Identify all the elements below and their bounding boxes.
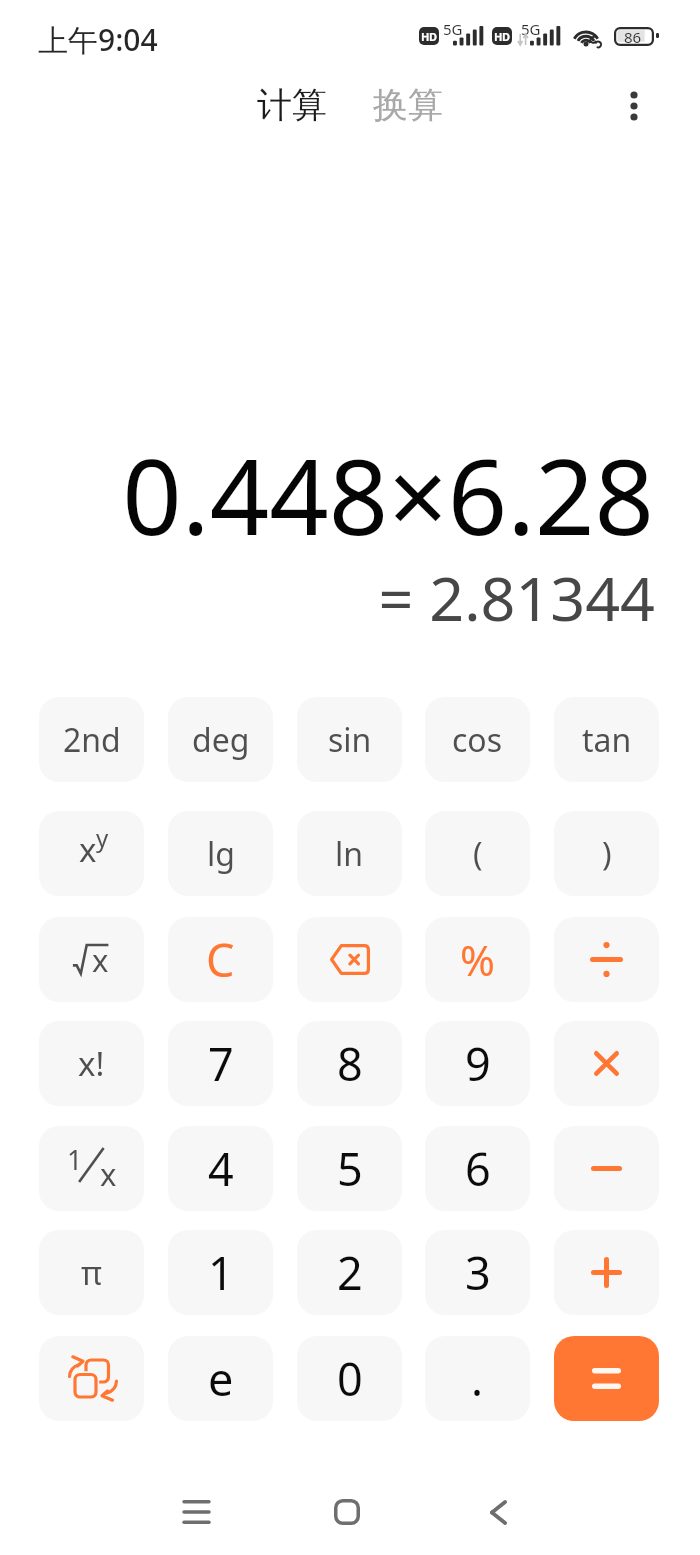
button[interactable]: Convert [39, 1336, 144, 1421]
button[interactable]: Factorial [39, 1021, 144, 1106]
staticText: HD [421, 29, 437, 44]
staticText: 1 [208, 1242, 234, 1303]
staticText: C [206, 929, 235, 990]
button[interactable]: π [39, 1230, 144, 1315]
staticText: 4 [208, 1138, 234, 1199]
button[interactable]: C [168, 917, 273, 1002]
button[interactable]: ) [554, 811, 659, 896]
button[interactable]: 换算 [367, 75, 449, 135]
button[interactable]: deg [168, 697, 273, 782]
staticText: e [208, 1348, 234, 1409]
button[interactable]: 5 [297, 1126, 402, 1211]
button[interactable]: 8 [297, 1021, 402, 1106]
button[interactable]: 0 [297, 1336, 402, 1421]
button[interactable]: 2 [297, 1230, 402, 1315]
button[interactable]: More options [606, 78, 662, 134]
button[interactable]: Plus [554, 1230, 659, 1315]
button[interactable]: . [425, 1336, 530, 1421]
button[interactable]: Delete [297, 917, 402, 1002]
staticText: x! [78, 1041, 105, 1086]
staticText: 0.448×6.28 [0, 424, 654, 566]
staticText: 2nd [63, 718, 121, 762]
staticText: x [79, 827, 97, 872]
button[interactable]: tan [554, 697, 659, 782]
staticText: cos [452, 718, 503, 762]
staticText: 7 [208, 1033, 234, 1094]
staticText: HD [494, 29, 510, 44]
staticText: 5 [337, 1138, 363, 1199]
staticText: π [81, 1251, 102, 1295]
staticText: tan [582, 718, 632, 762]
staticText: 上午9:04 [38, 19, 158, 60]
button[interactable]: Recent apps [156, 1472, 236, 1552]
staticText: deg [192, 718, 250, 762]
staticText: ln [335, 832, 364, 876]
button[interactable]: Square root [39, 917, 144, 1002]
button[interactable]: lg [168, 811, 273, 896]
staticText: 计算 [257, 83, 327, 127]
staticText: x [92, 939, 109, 981]
staticText: 86 [624, 27, 642, 46]
button[interactable]: Home [307, 1472, 387, 1552]
button[interactable]: 6 [425, 1126, 530, 1211]
staticText: . [471, 1348, 484, 1409]
staticText: x [100, 1153, 117, 1195]
button[interactable]: sin [297, 697, 402, 782]
button[interactable]: 1 [168, 1230, 273, 1315]
staticText: lg [207, 832, 235, 876]
staticText: 1 [67, 1141, 83, 1178]
button[interactable]: ln [297, 811, 402, 896]
staticText: ( [473, 832, 483, 876]
staticText: 0 [337, 1348, 363, 1409]
button[interactable]: Reciprocal [39, 1126, 144, 1211]
button[interactable]: e [168, 1336, 273, 1421]
button[interactable]: Divide [554, 917, 659, 1002]
staticText: % [460, 931, 495, 988]
staticText: y [96, 821, 109, 854]
button[interactable]: Multiply [554, 1021, 659, 1106]
staticText: 3 [465, 1242, 491, 1303]
staticText: sin [328, 718, 372, 762]
button[interactable]: ( [425, 811, 530, 896]
button[interactable]: cos [425, 697, 530, 782]
staticText: 6 [465, 1138, 491, 1199]
button[interactable]: Back [458, 1472, 538, 1552]
button[interactable]: % [425, 917, 530, 1002]
staticText: 8 [337, 1033, 363, 1094]
staticText: 5G [521, 19, 541, 39]
staticText: = 2.81344 [0, 556, 655, 639]
button[interactable]: 7 [168, 1021, 273, 1106]
button[interactable]: Equals [554, 1336, 659, 1421]
button[interactable]: 2nd [39, 697, 144, 782]
staticText: ) [602, 832, 612, 876]
button[interactable]: Minus [554, 1126, 659, 1211]
staticText: 换算 [373, 83, 443, 127]
button[interactable]: 计算 [251, 75, 333, 135]
button[interactable]: 9 [425, 1021, 530, 1106]
button[interactable]: 3 [425, 1230, 530, 1315]
staticText: 9 [465, 1033, 491, 1094]
staticText: 5G [443, 19, 463, 39]
staticText: 2 [337, 1242, 363, 1303]
button[interactable]: x to the power of y [39, 811, 144, 896]
button[interactable]: 4 [168, 1126, 273, 1211]
